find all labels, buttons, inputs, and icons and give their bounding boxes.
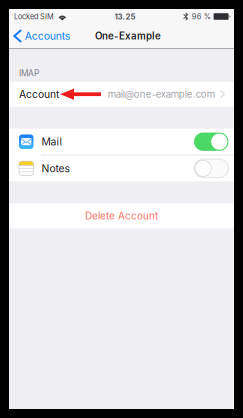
staticText: 96 % bbox=[192, 12, 211, 21]
button[interactable]: Accounts bbox=[11, 24, 76, 48]
staticText: Delete Account bbox=[85, 210, 158, 222]
staticText: Notes bbox=[41, 162, 69, 175]
staticText: Accounts bbox=[25, 30, 71, 42]
staticText: Locked SIM bbox=[14, 12, 54, 21]
staticText: IMAP bbox=[19, 68, 39, 78]
staticText: Mail bbox=[41, 135, 62, 148]
staticText: mail@one-example.com bbox=[108, 88, 215, 100]
staticText: 13.25 bbox=[114, 12, 135, 21]
button[interactable]: Account bbox=[9, 82, 234, 107]
staticText: One-Example bbox=[95, 30, 161, 42]
staticText: Account bbox=[19, 88, 59, 100]
button[interactable]: Delete Account bbox=[9, 203, 234, 228]
